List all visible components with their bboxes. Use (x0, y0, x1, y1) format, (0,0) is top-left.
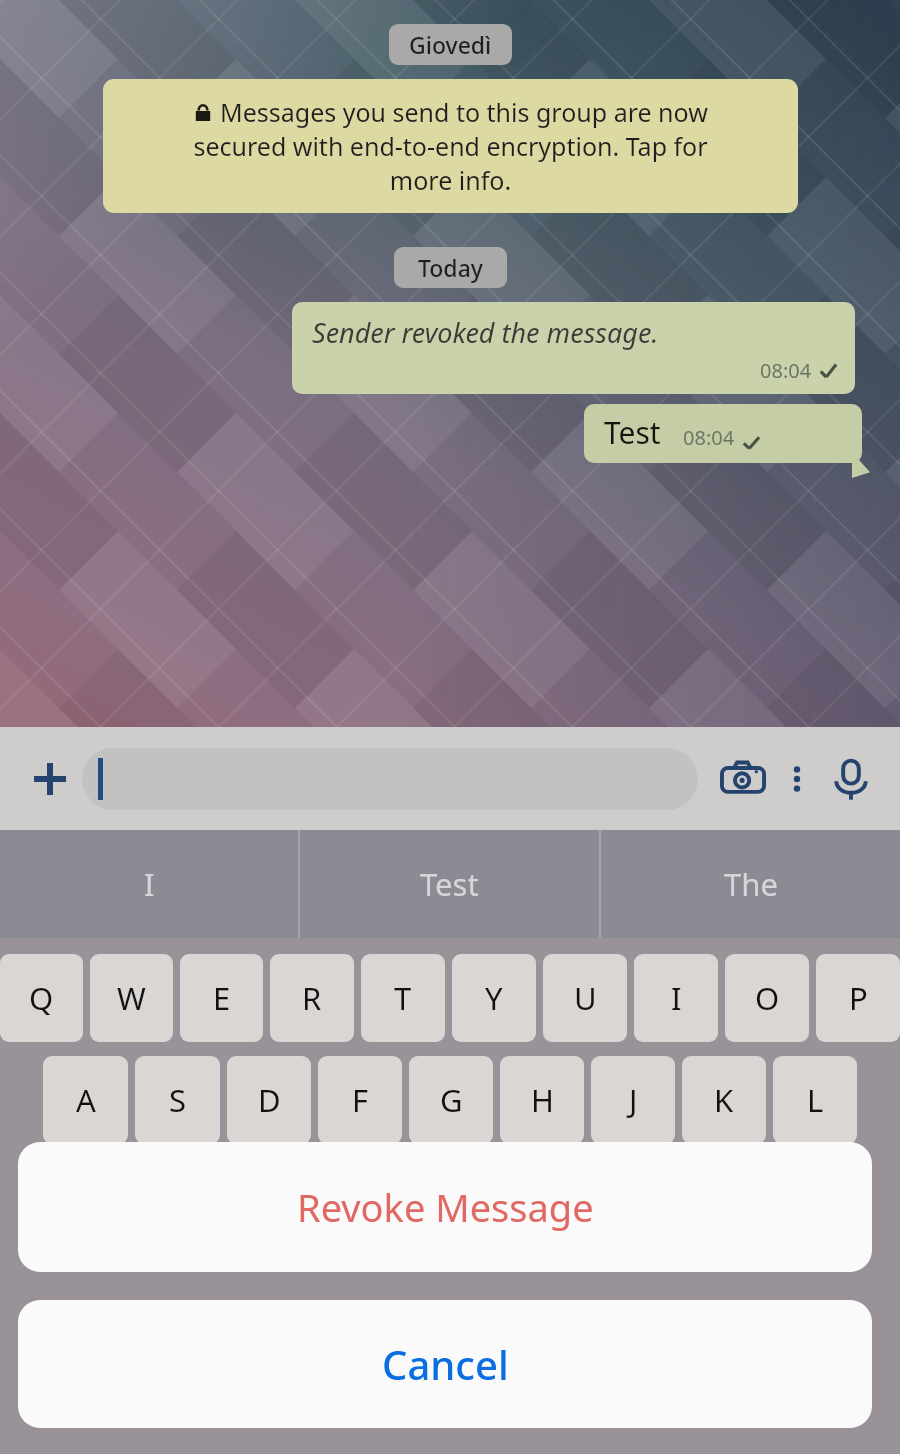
staticText: K (714, 1079, 734, 1121)
staticText: V (442, 1181, 461, 1223)
button[interactable]: Attach (22, 751, 78, 807)
button[interactable]: W (90, 954, 173, 1042)
button[interactable]: Today (394, 247, 507, 288)
button[interactable]: The (601, 830, 900, 938)
staticText: Y (485, 977, 503, 1019)
staticText: T (394, 977, 412, 1019)
staticText: R (302, 977, 322, 1019)
staticText: secured with end-to-end encryption. Tap … (129, 129, 772, 163)
button[interactable]: Voice message (820, 748, 882, 810)
staticText: J (629, 1079, 638, 1121)
button[interactable]: R (270, 954, 354, 1042)
staticText: H (531, 1079, 554, 1121)
button[interactable]: E (180, 954, 263, 1042)
button[interactable]: I (634, 954, 718, 1042)
button[interactable]: Camera (712, 748, 774, 810)
button[interactable]: B (501, 1158, 586, 1246)
button[interactable]: V (409, 1158, 494, 1246)
button[interactable]: K (682, 1056, 766, 1144)
button[interactable]: Sender revoked the message. (292, 302, 855, 394)
button[interactable]: Test (584, 404, 862, 463)
staticText: I (671, 977, 682, 1019)
staticText: I (144, 863, 155, 905)
staticText: B (533, 1181, 554, 1223)
button[interactable]: Test (300, 830, 599, 938)
staticText: 08:04 (760, 357, 812, 384)
button[interactable]: Revoke Message (18, 1142, 872, 1272)
staticText: Test (604, 412, 661, 453)
button[interactable]: Giovedì (389, 24, 512, 65)
staticText: D (258, 1079, 281, 1121)
staticText: E (213, 977, 231, 1019)
staticText: O (755, 977, 780, 1019)
staticText: Today (418, 252, 483, 283)
button[interactable]: G (409, 1056, 493, 1144)
button[interactable]: X (223, 1158, 309, 1246)
staticText: Giovedì (409, 29, 492, 60)
staticText: F (352, 1079, 369, 1121)
staticText: S (169, 1079, 187, 1121)
staticText: The (724, 863, 778, 905)
staticText: G (440, 1079, 463, 1121)
button[interactable]: Y (452, 954, 536, 1042)
button[interactable]: F (318, 1056, 402, 1144)
button[interactable]: A (43, 1056, 128, 1144)
button[interactable]: Messages you send to this group are now (103, 79, 798, 213)
button[interactable]: P (816, 954, 900, 1042)
button[interactable]: I (0, 830, 298, 938)
button[interactable]: D (227, 1056, 311, 1144)
button[interactable]: H (500, 1056, 584, 1144)
staticText: Test (420, 863, 479, 905)
staticText: W (117, 977, 146, 1019)
button[interactable]: S (135, 1056, 220, 1144)
staticText: more info. (129, 163, 772, 197)
staticText: U (574, 977, 597, 1019)
staticText: 08:04 (683, 424, 735, 451)
button[interactable]: J (591, 1056, 675, 1144)
button[interactable]: L (773, 1056, 857, 1144)
staticText: Sender revoked the message. (312, 314, 659, 351)
staticText: L (807, 1079, 824, 1121)
button[interactable]: U (543, 954, 627, 1042)
button[interactable]: Cancel (18, 1300, 872, 1428)
button[interactable] (82, 748, 698, 810)
button[interactable]: More options (774, 756, 820, 802)
staticText: C (349, 1181, 369, 1223)
staticText: Revoke Message (297, 1181, 594, 1233)
staticText: A (76, 1079, 96, 1121)
button[interactable]: T (361, 954, 445, 1042)
button[interactable]: Q (0, 954, 83, 1042)
staticText: P (849, 977, 868, 1019)
staticText: Cancel (382, 1337, 509, 1391)
staticText: Q (29, 977, 54, 1019)
staticText: Messages you send to this group are now (220, 95, 708, 129)
button[interactable]: O (725, 954, 809, 1042)
button[interactable]: C (316, 1158, 402, 1246)
